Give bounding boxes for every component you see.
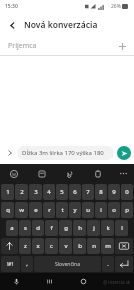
button[interactable]: h xyxy=(73,220,86,236)
button[interactable]: 7 xyxy=(82,184,94,200)
staticText: 5 xyxy=(60,188,64,196)
staticText: 8 xyxy=(99,188,103,196)
button[interactable]: w xyxy=(15,202,28,218)
button[interactable]: j xyxy=(87,220,100,236)
button[interactable]: g xyxy=(59,220,72,236)
button[interactable]: a xyxy=(6,220,18,236)
staticText: 6 xyxy=(73,188,77,196)
button[interactable]: l xyxy=(115,220,128,236)
staticText: 26% xyxy=(111,3,121,10)
staticText: 1 xyxy=(6,188,10,196)
staticText: v xyxy=(64,242,68,250)
button[interactable]: Back xyxy=(0,13,24,37)
button[interactable]: m xyxy=(101,238,114,254)
button[interactable]: n xyxy=(87,238,100,254)
staticText: @ inzercia.sk xyxy=(103,279,131,285)
button[interactable]: q xyxy=(1,202,14,218)
button[interactable]: z xyxy=(19,238,31,254)
staticText: 9 xyxy=(112,188,116,196)
button[interactable]: b xyxy=(73,238,86,254)
button[interactable]: y xyxy=(69,202,81,218)
button[interactable]: clip xyxy=(56,164,84,183)
staticText: r xyxy=(48,206,51,214)
button[interactable]: sticker xyxy=(28,164,56,183)
staticText: Príjemca xyxy=(8,41,37,51)
button[interactable]: v xyxy=(59,238,72,254)
staticText: y xyxy=(73,206,77,214)
button[interactable]: Send xyxy=(117,146,131,160)
button[interactable]: clipboard xyxy=(84,164,112,183)
button[interactable]: p xyxy=(121,202,133,218)
button[interactable]: Add recipient xyxy=(116,40,128,52)
button[interactable]: 9 xyxy=(108,184,120,200)
staticText: 4 xyxy=(47,188,51,196)
staticText: u xyxy=(86,206,90,214)
staticText: !#1 xyxy=(7,261,14,267)
staticText: m xyxy=(105,242,111,250)
staticText: g xyxy=(64,224,68,232)
staticText: h xyxy=(78,224,82,232)
staticText: q xyxy=(6,206,10,214)
button[interactable]: k xyxy=(101,220,114,236)
button[interactable]: 5 xyxy=(56,184,68,200)
staticText: Dĺžka 3m šírka 170 výška 180 xyxy=(22,149,104,157)
button[interactable]: 0 xyxy=(121,184,133,200)
staticText: t xyxy=(61,206,64,214)
staticText: o xyxy=(112,206,116,214)
button[interactable]: 2 xyxy=(15,184,28,200)
staticText: i xyxy=(100,206,102,214)
staticText: . xyxy=(107,260,109,268)
button[interactable]: 6 xyxy=(69,184,81,200)
button[interactable]: o xyxy=(108,202,120,218)
button[interactable]: More xyxy=(112,164,134,183)
button[interactable]: Voice input xyxy=(0,273,33,290)
staticText: c xyxy=(50,242,53,250)
staticText: p xyxy=(125,206,129,214)
staticText: 15:30 xyxy=(5,3,18,10)
button[interactable]: . xyxy=(102,256,114,272)
staticText: s xyxy=(24,224,27,232)
staticText: e xyxy=(34,206,38,214)
staticText: j xyxy=(93,224,95,232)
staticText: 7 xyxy=(86,188,90,196)
staticText: l xyxy=(121,224,123,232)
button[interactable]: Recents xyxy=(33,273,66,290)
staticText: Nová konverzácia xyxy=(24,19,98,31)
button[interactable]: f xyxy=(45,220,58,236)
button[interactable]: 8 xyxy=(95,184,107,200)
button[interactable]: x xyxy=(32,238,44,254)
staticText: b xyxy=(78,242,82,250)
button[interactable]: t xyxy=(56,202,68,218)
button[interactable]: Home xyxy=(66,273,100,290)
button[interactable]: Expand options xyxy=(3,146,17,160)
staticText: 3 xyxy=(34,188,38,196)
button[interactable]: d xyxy=(32,220,44,236)
button[interactable]: 1 xyxy=(1,184,14,200)
button[interactable]: Príjemca xyxy=(0,37,134,55)
staticText: a xyxy=(10,224,14,232)
button[interactable]: e xyxy=(29,202,42,218)
button[interactable]: Backspace xyxy=(115,238,133,254)
staticText: f xyxy=(50,224,53,232)
staticText: 0 xyxy=(125,188,129,196)
button[interactable]: Enter xyxy=(115,256,133,272)
button[interactable]: Dĺžka 3m šírka 170 výška 180 xyxy=(17,146,114,160)
button[interactable]: c xyxy=(45,238,58,254)
staticText: w xyxy=(19,206,24,214)
button[interactable]: !#1 xyxy=(1,256,20,272)
button[interactable]: u xyxy=(82,202,94,218)
button[interactable]: r xyxy=(43,202,55,218)
staticText: d xyxy=(36,224,40,232)
button[interactable]: 4 xyxy=(43,184,55,200)
button[interactable]: i xyxy=(95,202,107,218)
button[interactable]: Shift xyxy=(1,238,18,254)
button[interactable]: , xyxy=(21,256,33,272)
staticText: k xyxy=(106,224,110,232)
button[interactable]: emoji xyxy=(0,164,28,183)
button[interactable]: Back xyxy=(100,273,134,290)
button[interactable]: Slovenčina xyxy=(34,256,101,272)
button[interactable]: s xyxy=(19,220,31,236)
staticText: n xyxy=(92,242,96,250)
staticText: , xyxy=(26,260,28,268)
button[interactable]: 3 xyxy=(29,184,42,200)
